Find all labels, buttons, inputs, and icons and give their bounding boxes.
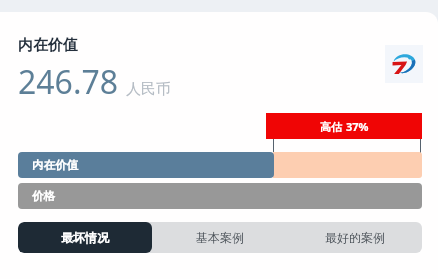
staticText: 最坏情况	[61, 230, 109, 245]
staticText: 内在价值	[18, 36, 78, 55]
staticText: 246.78	[18, 60, 119, 104]
staticText: 价格	[32, 189, 55, 203]
button[interactable]: 基本案例	[152, 222, 287, 253]
button[interactable]: 最坏情况	[18, 222, 152, 253]
staticText: 内在价值	[32, 158, 78, 172]
staticText: 人民币	[126, 80, 171, 99]
button[interactable]: Company logo	[385, 45, 423, 83]
staticText: 基本案例	[196, 230, 244, 245]
button[interactable]: 最好的案例	[287, 222, 422, 253]
button[interactable]: 内在价值	[18, 152, 274, 178]
button[interactable]: 价格	[18, 183, 422, 209]
staticText: 高估	[320, 120, 342, 134]
staticText: 37%	[346, 119, 369, 134]
staticText: 最好的案例	[325, 230, 385, 245]
